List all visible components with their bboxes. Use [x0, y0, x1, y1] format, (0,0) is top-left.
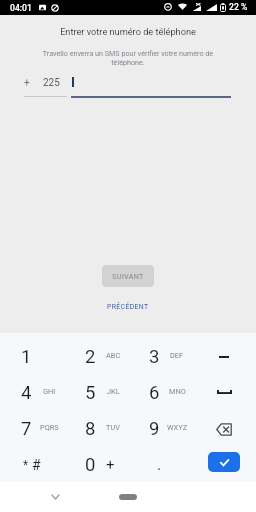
button[interactable]: Space	[192, 375, 256, 411]
staticText: PRÉCÉDENT	[107, 303, 149, 311]
staticText: Travello enverra un SMS pour vérifier vo…	[37, 49, 219, 67]
button[interactable]: 0	[64, 447, 128, 482]
staticText: 1	[21, 346, 32, 368]
button[interactable]: Hide keyboard	[45, 486, 66, 507]
staticText: 4	[21, 382, 32, 404]
button[interactable]: SUIVANT	[102, 265, 154, 287]
staticText: GHI	[43, 387, 56, 396]
staticText: 3	[149, 346, 160, 368]
staticText: 2	[85, 346, 96, 368]
staticText: #	[32, 457, 41, 473]
staticText: WXYZ	[167, 423, 188, 432]
button[interactable]: Done	[192, 447, 256, 482]
button[interactable]: 5	[64, 375, 128, 411]
button[interactable]: 1	[0, 339, 64, 375]
staticText: 6	[149, 382, 160, 404]
staticText: *	[23, 458, 29, 472]
staticText: .	[157, 455, 162, 474]
staticText: TUV	[106, 423, 120, 432]
staticText: MNO	[169, 387, 186, 396]
staticText: 225	[43, 77, 60, 89]
staticText: PQRS	[40, 423, 59, 432]
staticText: 8	[85, 418, 96, 440]
button[interactable]: *	[0, 447, 64, 482]
staticText: ABC	[106, 351, 121, 360]
staticText: Entrer votre numéro de téléphone	[0, 26, 256, 37]
staticText: 9	[149, 418, 160, 440]
button[interactable]: 8	[64, 411, 128, 447]
staticText: SUIVANT	[112, 272, 144, 280]
button[interactable]: 4	[0, 375, 64, 411]
staticText: JKL	[107, 387, 120, 396]
staticText: 7	[21, 418, 32, 440]
button[interactable]: 9	[128, 411, 192, 447]
staticText: +	[24, 77, 30, 89]
button[interactable]: Done	[208, 452, 240, 472]
staticText: 22 %	[229, 2, 248, 12]
button[interactable]: 6	[128, 375, 192, 411]
staticText: +	[106, 456, 115, 474]
button[interactable]: Backspace	[192, 411, 256, 447]
button[interactable]: PRÉCÉDENT	[97, 298, 159, 316]
button[interactable]: 2	[64, 339, 128, 375]
button[interactable]: 3	[128, 339, 192, 375]
button[interactable]: Dash	[192, 339, 256, 375]
staticText: 5	[85, 382, 96, 404]
staticText: DEF	[170, 351, 184, 360]
staticText: 0	[85, 454, 96, 476]
button[interactable]: Home	[119, 494, 137, 500]
button[interactable]: .	[128, 447, 192, 482]
button[interactable]: 7	[0, 411, 64, 447]
staticText: 04:01	[10, 3, 32, 13]
